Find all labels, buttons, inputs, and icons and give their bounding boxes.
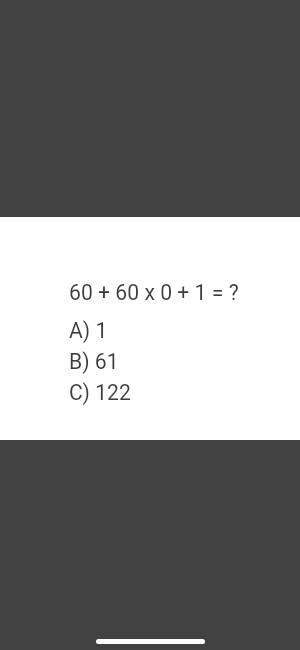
- button[interactable]: Home: [96, 639, 205, 644]
- staticText: B) 61: [69, 349, 119, 374]
- button[interactable]: Photo viewer: [0, 0, 300, 650]
- staticText: C) 122: [69, 380, 131, 405]
- staticText: A) 1: [69, 318, 108, 343]
- staticText: 60 + 60 x 0 + 1 = ?: [69, 280, 239, 305]
- button[interactable]: 60 + 60 x 0 + 1 = ?: [0, 217, 300, 440]
